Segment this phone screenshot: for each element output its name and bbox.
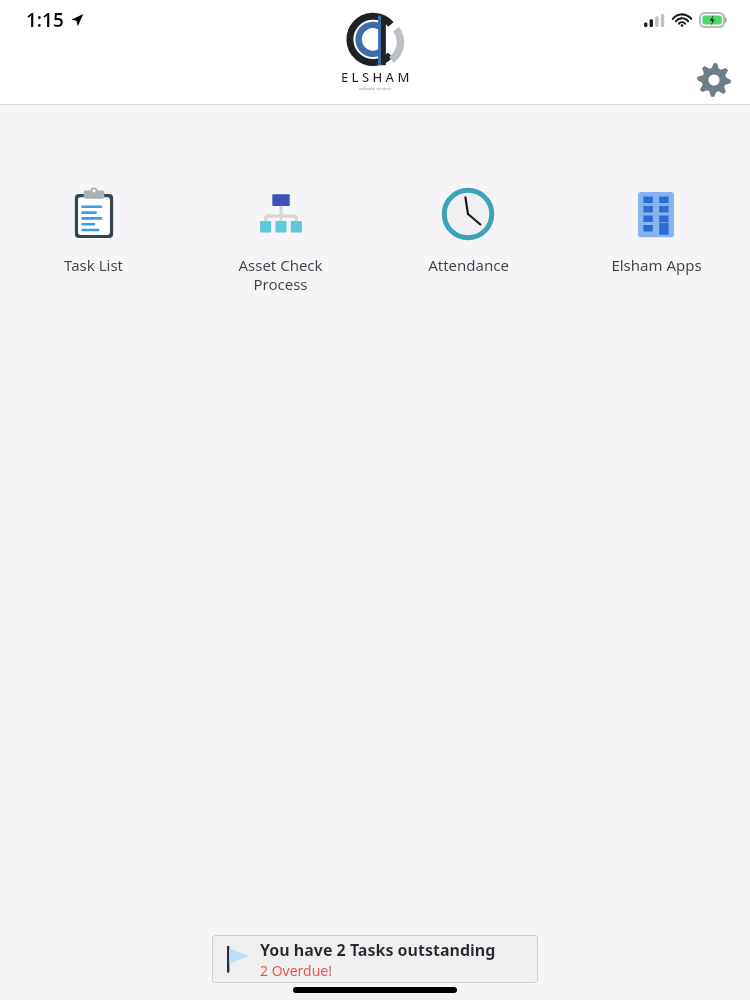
staticText: Attendance bbox=[428, 255, 509, 275]
button[interactable]: Settings bbox=[692, 58, 736, 102]
staticText: Asset Check Process bbox=[238, 255, 323, 294]
button[interactable]: Elsham Apps bbox=[562, 181, 750, 279]
button[interactable]: You have 2 Tasks outstanding bbox=[212, 935, 538, 983]
staticText: Elsham Apps bbox=[611, 255, 702, 275]
button[interactable]: Asset Check Process bbox=[187, 181, 374, 298]
staticText: 2 Overdue! bbox=[260, 961, 333, 980]
staticText: You have 2 Tasks outstanding bbox=[260, 939, 496, 961]
button[interactable]: Task List bbox=[0, 181, 187, 279]
button[interactable]: Attendance bbox=[374, 181, 562, 279]
staticText: Task List bbox=[64, 255, 123, 275]
staticText: E L S H A M bbox=[341, 68, 410, 86]
staticText: 1:15 bbox=[26, 7, 64, 33]
staticText: software services bbox=[359, 86, 392, 91]
